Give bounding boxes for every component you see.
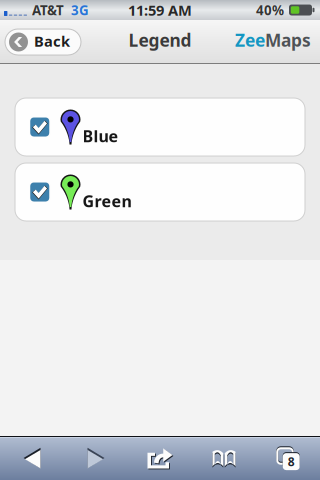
button[interactable]: Back	[5, 29, 81, 55]
staticText: 40%	[256, 1, 284, 19]
staticText: Back	[34, 31, 70, 51]
staticText: AT&T	[32, 1, 64, 19]
staticText: Green	[82, 190, 131, 212]
button[interactable]: Blue	[15, 98, 305, 156]
button[interactable]: Back	[0, 436, 64, 480]
staticText: Zee	[235, 28, 265, 51]
button[interactable]: Bookmarks	[192, 436, 256, 480]
button[interactable]: Forward	[64, 436, 128, 480]
button[interactable]: Green	[15, 163, 305, 221]
staticText: Blue	[82, 125, 118, 147]
button[interactable]: Zee	[235, 30, 320, 53]
button[interactable]: Share	[128, 436, 192, 480]
staticText: Maps	[265, 28, 311, 51]
staticText: Legend	[128, 28, 191, 51]
staticText: 8	[288, 454, 295, 469]
button[interactable]: Tabs	[256, 436, 320, 480]
staticText: 11:59 AM	[128, 0, 192, 20]
staticText: 3G	[71, 1, 89, 19]
